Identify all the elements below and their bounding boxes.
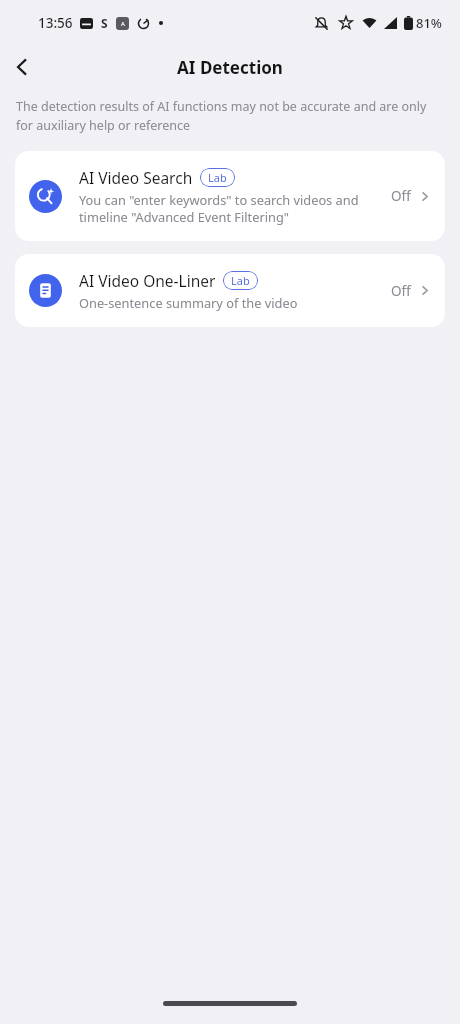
staticText: Lab bbox=[231, 273, 250, 288]
button[interactable]: AI Video One-Liner bbox=[15, 254, 445, 327]
staticText: 81% bbox=[416, 14, 442, 32]
staticText: One-sentence summary of the video bbox=[79, 294, 298, 311]
staticText: A bbox=[121, 20, 125, 28]
staticText: Off bbox=[391, 187, 411, 205]
staticText: Lab bbox=[208, 170, 227, 185]
staticText: timeline "Advanced Event Filtering" bbox=[79, 208, 290, 225]
staticText: AI Video Search bbox=[79, 167, 193, 188]
staticText: S bbox=[101, 15, 108, 31]
staticText: The detection results of AI functions ma… bbox=[16, 98, 444, 134]
button[interactable]: Back bbox=[0, 46, 44, 88]
staticText: 13:56 bbox=[38, 14, 73, 32]
staticText: AI Detection bbox=[177, 56, 283, 79]
button[interactable]: AI Video Search bbox=[15, 151, 445, 241]
staticText: Off bbox=[391, 282, 411, 300]
staticText: AI Video One-Liner bbox=[79, 270, 216, 291]
staticText: You can "enter keywords" to search video… bbox=[79, 191, 359, 208]
